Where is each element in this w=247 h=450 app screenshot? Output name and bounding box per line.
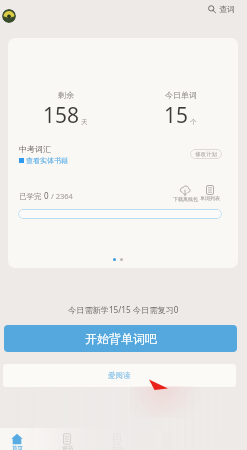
button[interactable]: 修改计划 (190, 149, 222, 159)
staticText: 15 (164, 101, 189, 130)
staticText: 今日单词 (165, 90, 197, 100)
staticText: 爱阅读 (108, 371, 131, 380)
button[interactable]: 查看实体书籍 (19, 156, 68, 165)
button[interactable]: 下载离线包 (172, 185, 198, 202)
button[interactable]: 首页 (3, 433, 31, 450)
staticText: 词书 (62, 445, 73, 450)
staticText: 查看实体书籍 (26, 156, 68, 165)
staticText: / 2364 (49, 191, 73, 201)
staticText: 查词 (219, 4, 235, 14)
button[interactable]: 爱阅读 (3, 364, 236, 387)
button[interactable]: Search word (206, 2, 237, 16)
staticText: 0 (44, 190, 49, 201)
button[interactable]: 词书 (53, 433, 81, 450)
staticText: 修改计划 (195, 151, 217, 158)
staticText: 中考词汇 (19, 144, 51, 154)
staticText: 个 (190, 118, 197, 126)
staticText: 剩余 (58, 90, 74, 100)
staticText: 158 (43, 101, 80, 130)
staticText: 开始背单词吧 (85, 331, 157, 346)
button[interactable]: 开始背单词吧 (4, 325, 237, 352)
staticText: 已学完 (19, 191, 44, 201)
staticText: 下载离线包 (173, 196, 198, 202)
button[interactable]: Profile (2, 9, 16, 23)
staticText: 首页 (12, 445, 23, 450)
staticText: 单词列表 (200, 195, 220, 201)
staticText: 今日需新学15/15 今日需复习0 (68, 304, 179, 315)
staticText: 天 (81, 118, 88, 126)
button[interactable]: 单词列表 (197, 185, 223, 201)
